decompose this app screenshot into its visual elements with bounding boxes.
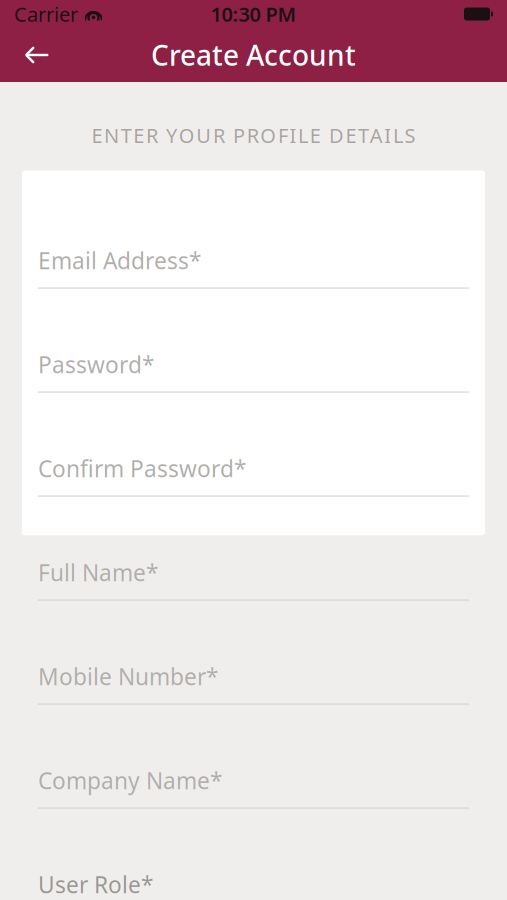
staticText: Password* [38, 349, 154, 380]
button[interactable]: Password* [38, 289, 469, 393]
staticText: Email Address* [38, 245, 201, 276]
button[interactable]: Confirm Password* [38, 393, 469, 497]
staticText: 10:30 PM [210, 1, 296, 27]
button[interactable]: User Role* [38, 809, 469, 900]
staticText: Mobile Number* [38, 661, 218, 692]
button[interactable]: Back [14, 32, 60, 78]
staticText: Create Account [151, 36, 356, 74]
button[interactable]: Email Address* [38, 185, 469, 289]
button[interactable]: Company Name* [38, 705, 469, 809]
button[interactable]: Mobile Number* [38, 601, 469, 705]
staticText: Carrier [14, 1, 78, 27]
staticText: Company Name* [38, 765, 222, 796]
staticText: Full Name* [38, 557, 158, 588]
staticText: User Role* [38, 869, 153, 900]
button[interactable]: Full Name* [38, 497, 469, 601]
staticText: Confirm Password* [38, 453, 246, 484]
staticText: ENTER YOUR PROFILE DETAILS [91, 122, 415, 149]
